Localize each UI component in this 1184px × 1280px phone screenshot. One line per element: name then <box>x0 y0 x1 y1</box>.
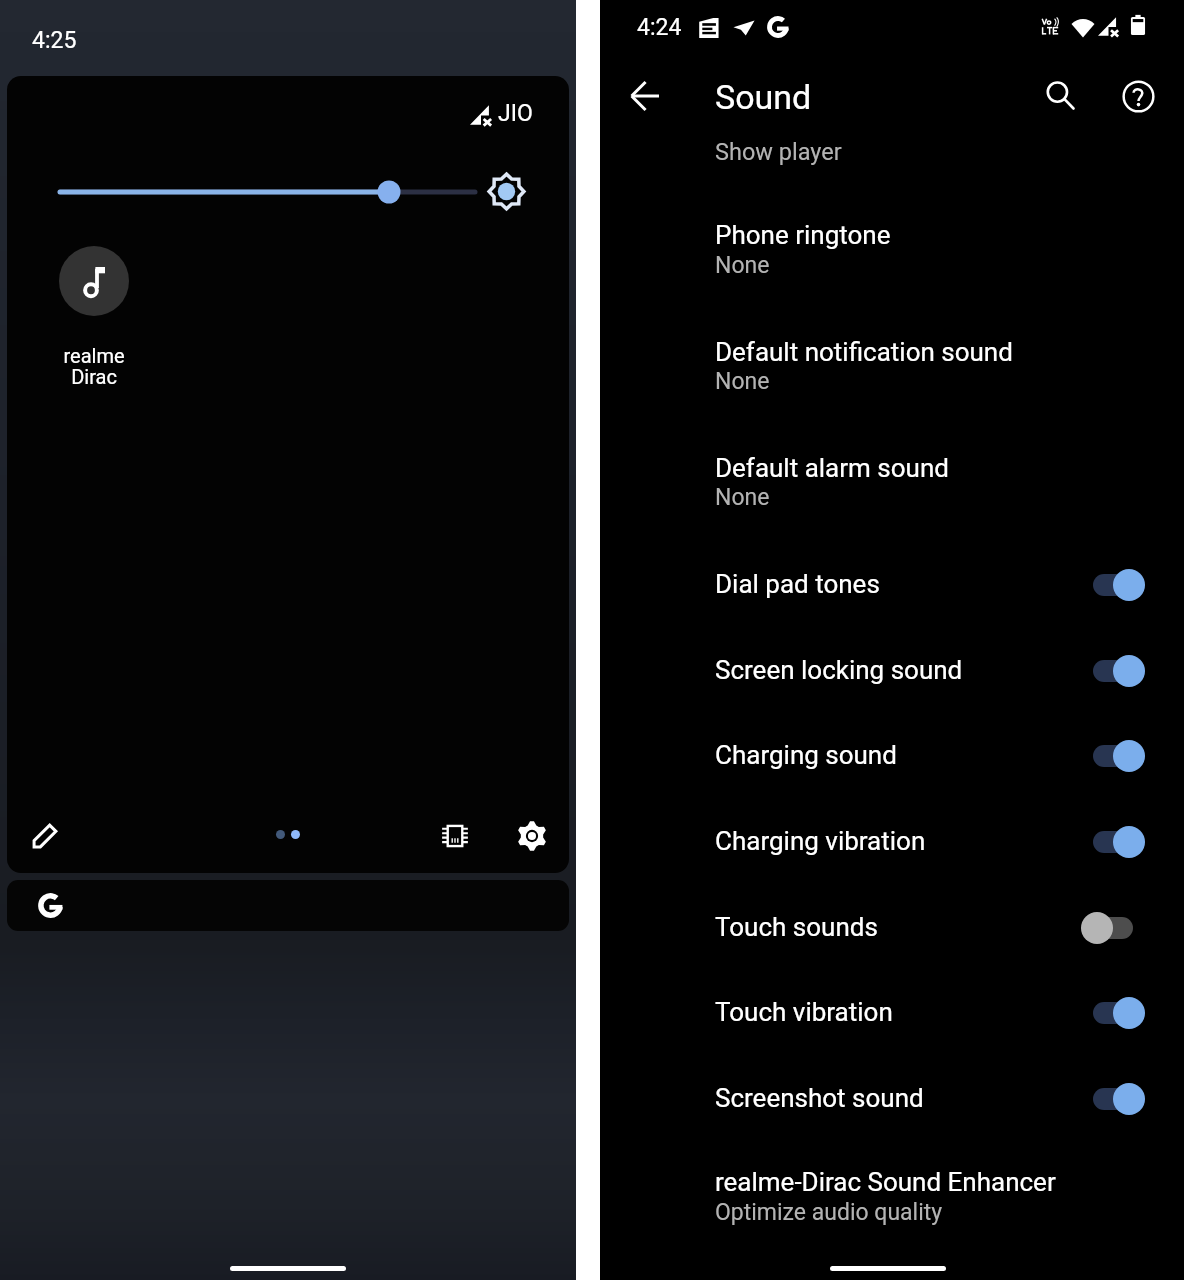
button[interactable]: Edit <box>21 812 68 859</box>
button[interactable]: JIO <box>7 76 569 873</box>
staticText: Charging vibration <box>715 826 926 856</box>
staticText: 4:25 <box>32 27 77 54</box>
button[interactable]: On <box>1081 1079 1145 1119</box>
staticText: Charging sound <box>715 740 897 770</box>
staticText: JIO <box>498 100 533 127</box>
button[interactable] <box>600 973 1184 1047</box>
button[interactable] <box>600 317 1184 398</box>
button[interactable] <box>600 1147 1184 1229</box>
button[interactable]: Chipset <box>431 812 478 859</box>
button[interactable]: On <box>1081 993 1145 1033</box>
button[interactable]: Brightness <box>484 169 528 213</box>
staticText: Touch vibration <box>715 997 893 1027</box>
staticText: None <box>715 252 770 279</box>
button[interactable]: Settings <box>508 812 555 859</box>
staticText: Screen locking sound <box>715 655 963 685</box>
staticText: realme-Dirac Sound Enhancer <box>715 1167 1056 1197</box>
staticText: None <box>715 484 770 511</box>
staticText: Screenshot sound <box>715 1083 924 1113</box>
button[interactable] <box>600 802 1184 876</box>
staticText: Dial pad tones <box>715 569 880 599</box>
staticText: realme Dirac <box>34 344 154 389</box>
button[interactable] <box>600 716 1184 790</box>
button[interactable]: Help <box>1110 68 1166 124</box>
staticText: Touch sounds <box>715 912 878 942</box>
staticText: Show player <box>715 138 842 166</box>
button[interactable]: Off <box>1081 908 1145 948</box>
button[interactable] <box>600 631 1184 705</box>
staticText: Sound <box>715 77 812 117</box>
staticText: Default notification sound <box>715 337 1013 367</box>
button[interactable] <box>600 433 1184 514</box>
button[interactable]: Search <box>1032 67 1088 123</box>
button[interactable] <box>600 200 1184 282</box>
button[interactable]: On <box>1081 651 1145 691</box>
button[interactable]: On <box>1081 565 1145 605</box>
button[interactable] <box>600 888 1184 962</box>
button[interactable] <box>600 545 1184 619</box>
button[interactable] <box>7 880 569 931</box>
button[interactable] <box>600 1059 1184 1133</box>
button[interactable]: On <box>1081 736 1145 776</box>
button[interactable]: On <box>1081 822 1145 862</box>
staticText: None <box>715 368 770 395</box>
staticText: Optimize audio quality <box>715 1199 943 1226</box>
staticText: 4:24 <box>637 14 682 41</box>
button[interactable] <box>59 246 129 316</box>
staticText: Default alarm sound <box>715 453 949 483</box>
button[interactable]: Back <box>617 68 673 124</box>
staticText: Phone ringtone <box>715 220 891 250</box>
